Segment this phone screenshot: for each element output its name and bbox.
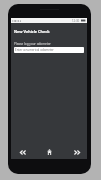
- staticText: 12:30: [72, 19, 80, 23]
- button[interactable]: Home: [37, 145, 61, 159]
- staticText: New Vehicle Check: [14, 29, 50, 34]
- button[interactable]: Forward: [65, 145, 89, 159]
- staticText: Enter a numerical odometer: [15, 48, 54, 52]
- staticText: Please log your odometer: [14, 42, 51, 46]
- button[interactable]: Enter a numerical odometer: [14, 47, 84, 53]
- button[interactable]: Back: [11, 145, 35, 159]
